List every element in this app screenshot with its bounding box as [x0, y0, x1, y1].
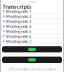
staticText: Meeting note 3: [6, 19, 31, 24]
staticText: 120 minutes of transcription: [8, 66, 56, 71]
staticText: Meeting note 1: [6, 9, 31, 14]
staticText: Meeting note 7: [6, 39, 31, 44]
staticText: Transcripts: [3, 3, 32, 10]
staticText: Meeting note 4: [6, 24, 31, 29]
staticText: Meeting note 2: [6, 14, 31, 19]
staticText: Meeting note 5: [6, 29, 31, 34]
staticText: Meeting note 6: [6, 34, 31, 39]
